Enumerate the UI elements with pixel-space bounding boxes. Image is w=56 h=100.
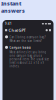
button[interactable]: Voice — [46, 29, 48, 31]
staticText: Most airlines let you bring one carry-on… — [9, 50, 49, 68]
staticText: 9:41 — [5, 22, 12, 25]
button[interactable]: Menu — [5, 29, 7, 31]
staticText: ChatGPT — [8, 27, 25, 33]
button[interactable]: New chat — [49, 29, 51, 31]
staticText: Instant — [1, 0, 21, 7]
staticText: What are the size limits? — [9, 39, 41, 43]
staticText: answers — [1, 7, 25, 14]
staticText: Carry-on basics — [9, 46, 30, 49]
staticText: Can I bring a carry-on bag? — [9, 35, 45, 39]
